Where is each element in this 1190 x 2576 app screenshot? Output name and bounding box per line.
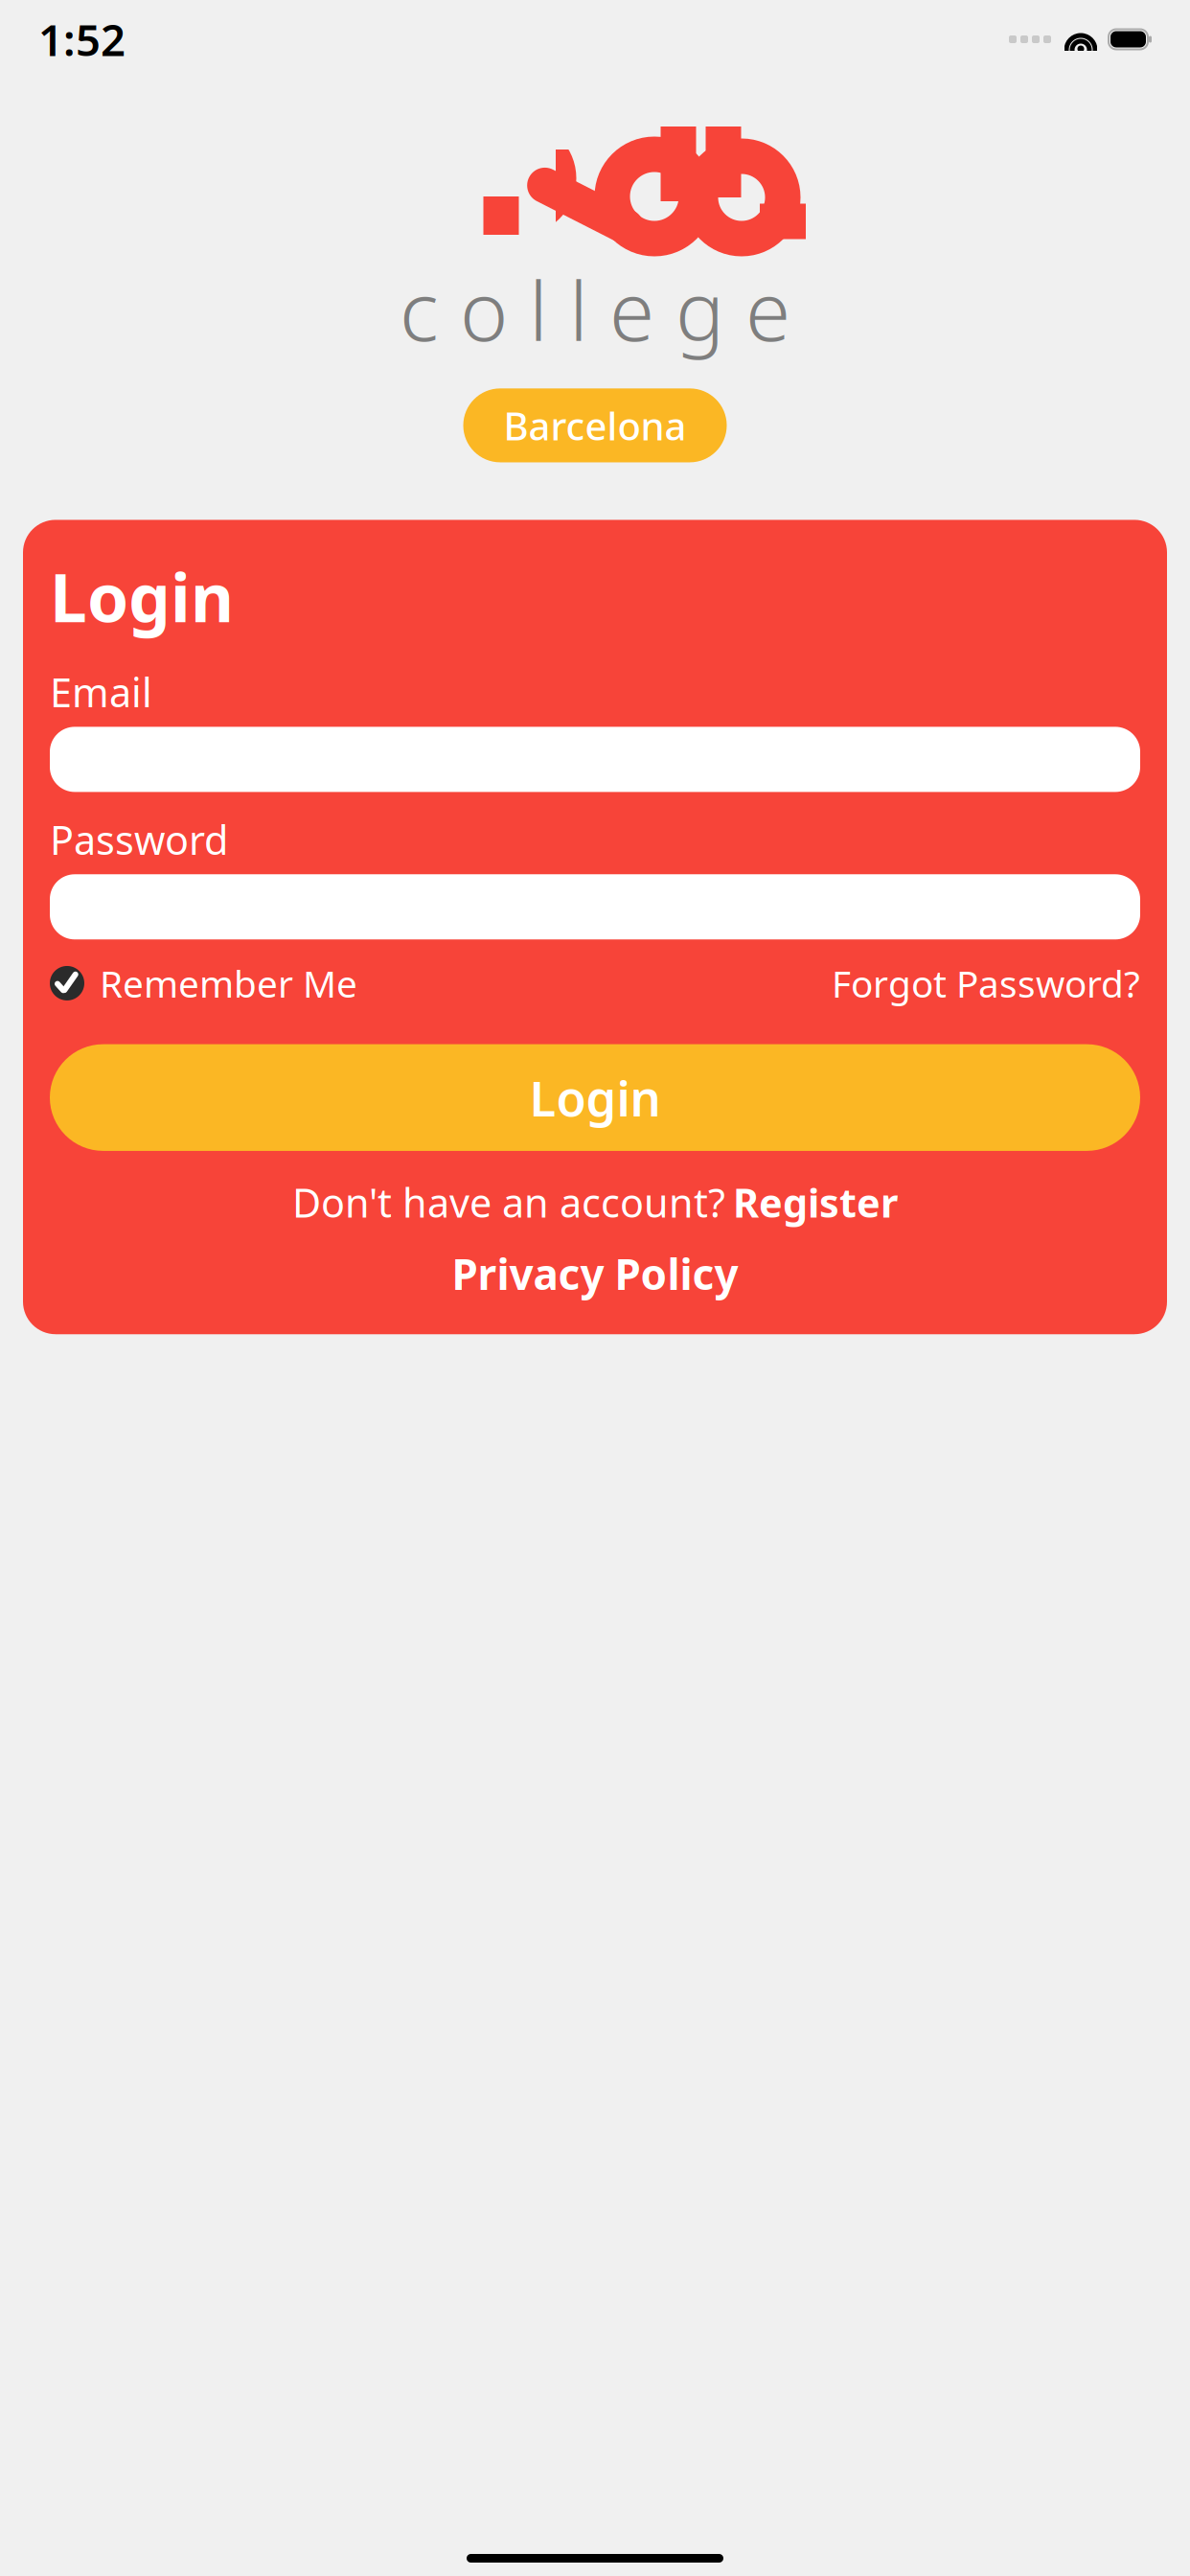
button[interactable]: Login bbox=[50, 1044, 1140, 1151]
staticText: 1:52 bbox=[38, 10, 126, 68]
staticText: Don't have an account? bbox=[292, 1176, 725, 1228]
button[interactable]: Don't have an account? bbox=[50, 1176, 1140, 1228]
staticText: Privacy Policy bbox=[452, 1246, 738, 1302]
button[interactable]: Barcelona bbox=[463, 388, 727, 462]
staticText: c o l l e g e bbox=[400, 255, 790, 363]
staticText: Remember Me bbox=[100, 959, 357, 1008]
staticText: Email bbox=[50, 666, 152, 718]
button[interactable]: Forgot Password? bbox=[832, 959, 1140, 1008]
staticText: Login bbox=[50, 552, 234, 641]
staticText: Barcelona bbox=[503, 400, 687, 451]
staticText: Password bbox=[50, 813, 228, 866]
button[interactable]: Privacy Policy bbox=[50, 1246, 1140, 1302]
staticText: Login bbox=[529, 1065, 661, 1130]
staticText: Forgot Password? bbox=[832, 959, 1140, 1008]
button[interactable]: Remember Me bbox=[50, 959, 357, 1008]
staticText: Register bbox=[733, 1176, 898, 1228]
